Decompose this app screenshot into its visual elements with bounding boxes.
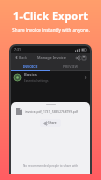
button[interactable]: invoice-pdf_1731_53B52768799.pdf <box>11 108 90 115</box>
button[interactable]: PREVIEW <box>50 62 90 70</box>
staticText: Back <box>19 55 27 60</box>
staticText: PREVIEW <box>63 64 78 69</box>
staticText: Basics <box>24 72 37 78</box>
staticText: Manage Invoice <box>37 55 66 60</box>
staticText: invoice-pdf_1731_53B52768799.pdf <box>25 110 78 114</box>
staticText: No recommended people to share with <box>23 164 79 168</box>
button[interactable]: Basics <box>11 71 90 84</box>
button[interactable]: Back <box>14 54 28 61</box>
staticText: INVOICE <box>23 64 38 69</box>
staticText: 1-Click Export <box>13 8 88 23</box>
staticText: 7:31 <box>14 47 21 52</box>
button[interactable]: Share <box>75 55 81 61</box>
button[interactable]: INVOICE <box>11 62 50 70</box>
button[interactable]: Save <box>81 55 87 61</box>
staticText: Share <box>48 121 57 125</box>
button[interactable]: Share <box>40 119 61 127</box>
staticText: Share invoice instantly with anyone. <box>12 27 90 33</box>
staticText: Essential settings <box>24 79 49 83</box>
